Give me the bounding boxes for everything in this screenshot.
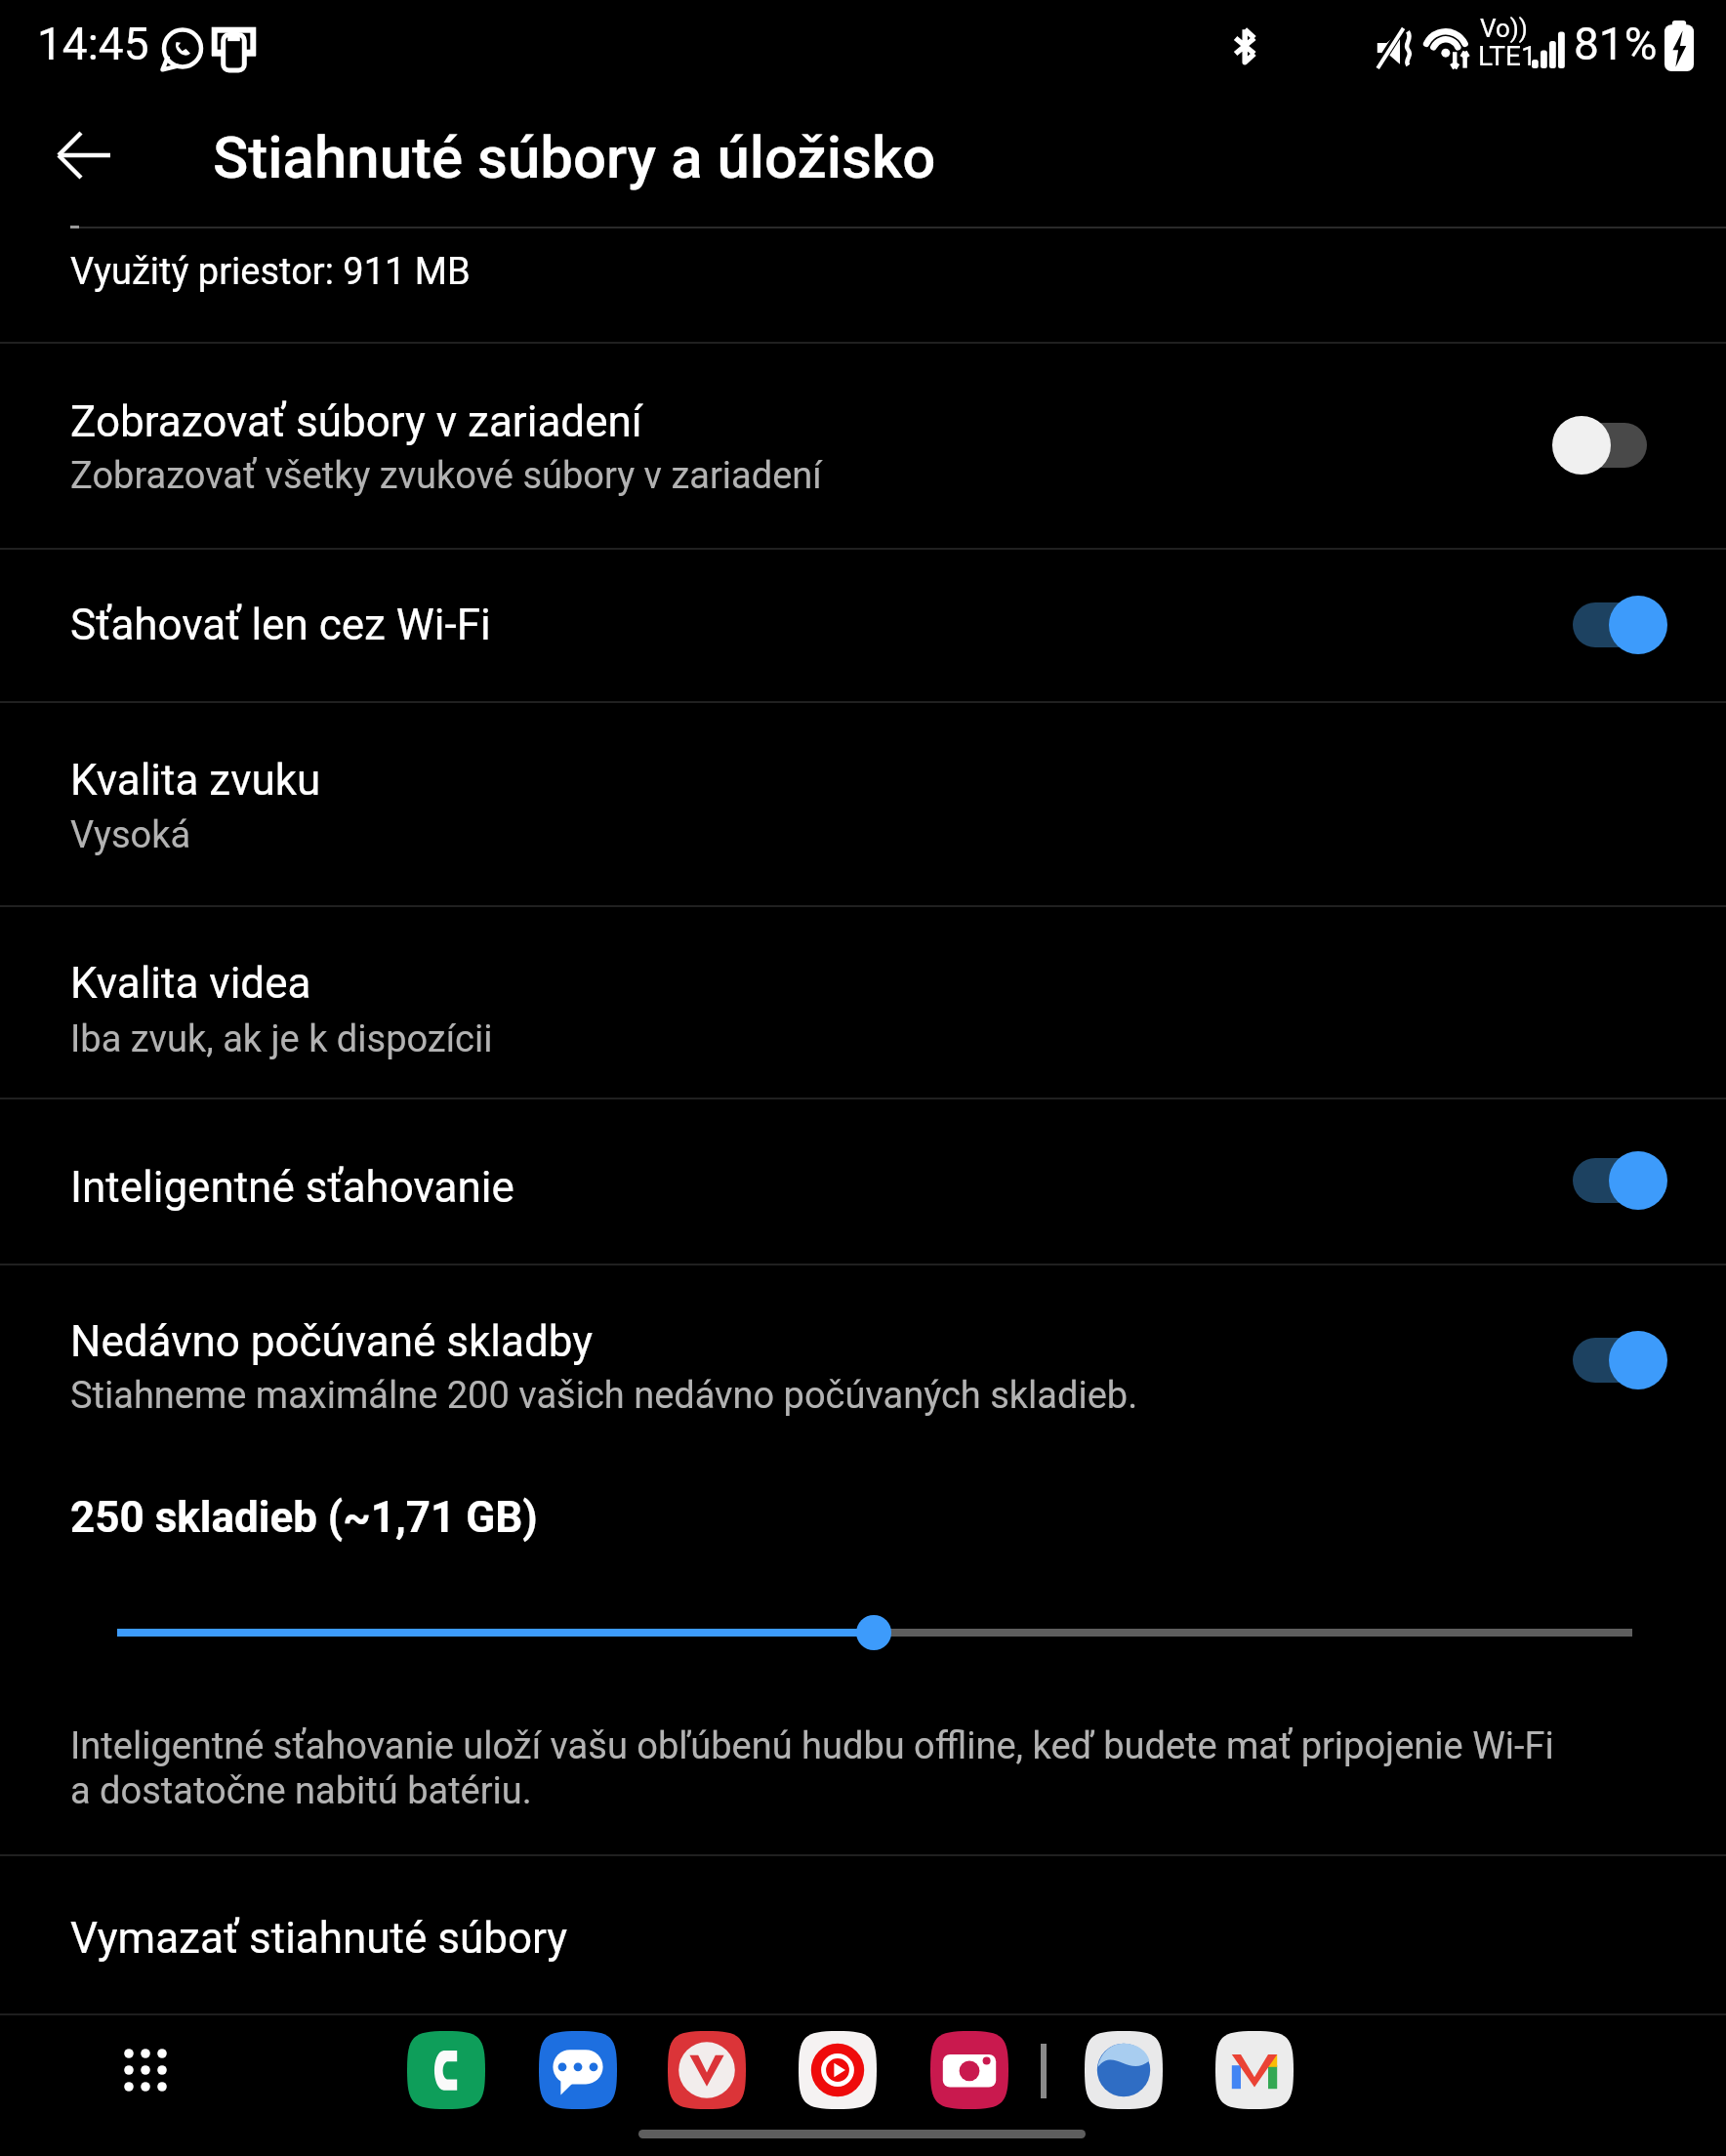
staticText: 250 skladieb (~1,71 GB) [70, 1492, 538, 1543]
button[interactable]: Back [45, 110, 135, 200]
button[interactable]: Earth [1085, 2031, 1163, 2109]
staticText: Stiahnuté súbory a úložisko [213, 123, 936, 191]
staticText: Vysoká [70, 813, 191, 857]
staticText: Inteligentné sťahovanie uloží vašu obľúb… [70, 1724, 1554, 1813]
button[interactable]: Inteligentné sťahovanie [0, 1098, 1726, 1264]
staticText: Inteligentné sťahovanie [70, 1162, 514, 1213]
button[interactable]: Zobrazovať súbory v zariadení [0, 342, 1726, 548]
button[interactable]: Gmail [1215, 2031, 1294, 2109]
button[interactable]: Instagram [930, 2031, 1008, 2109]
button[interactable]: Phone [407, 2031, 485, 2109]
button[interactable]: Nedávno počúvané skladby [0, 1264, 1726, 1457]
button[interactable]: Sťahovať len cez Wi-Fi [0, 548, 1726, 701]
button[interactable]: Vymazať stiahnuté súbory [0, 1854, 1726, 2011]
staticText: Zobrazovať súbory v zariadení [70, 396, 642, 447]
button[interactable]: Messages [539, 2031, 617, 2109]
button[interactable]: Kvalita zvuku [0, 701, 1726, 905]
staticText: Kvalita zvuku [70, 755, 321, 806]
staticText: Využitý priestor: 911 MB [70, 250, 471, 294]
staticText: Kvalita videa [70, 958, 311, 1009]
button[interactable]: Kvalita videa [0, 905, 1726, 1098]
staticText: Stiahneme maximálne 200 vašich nedávno p… [70, 1374, 1138, 1418]
button[interactable]: Switch on [1566, 1149, 1667, 1212]
staticText: Zobrazovať všetky zvukové súbory v zaria… [70, 454, 822, 498]
button[interactable]: Switch on [1566, 1329, 1667, 1391]
staticText: Vo)) [1480, 14, 1528, 43]
button[interactable]: Switch on [1566, 594, 1667, 656]
button[interactable]: Vivaldi [668, 2031, 746, 2109]
staticText: LTE1 [1478, 40, 1537, 72]
staticText: 14:45 [37, 18, 149, 70]
button[interactable]: Switch off [1552, 414, 1654, 477]
staticText: Nedávno počúvané skladby [70, 1316, 594, 1367]
button[interactable]: Number of songs [117, 1597, 1632, 1668]
button[interactable]: Apps [112, 2037, 179, 2103]
button[interactable]: Využitý priestor: 911 MB [0, 227, 1726, 342]
staticText: Sťahovať len cez Wi-Fi [70, 600, 491, 650]
staticText: Iba zvuk, ak je k dispozícii [70, 1017, 493, 1061]
staticText: 81% [1574, 18, 1658, 70]
button[interactable]: YouTube Music [799, 2031, 877, 2109]
staticText: Vymazať stiahnuté súbory [70, 1913, 568, 1964]
